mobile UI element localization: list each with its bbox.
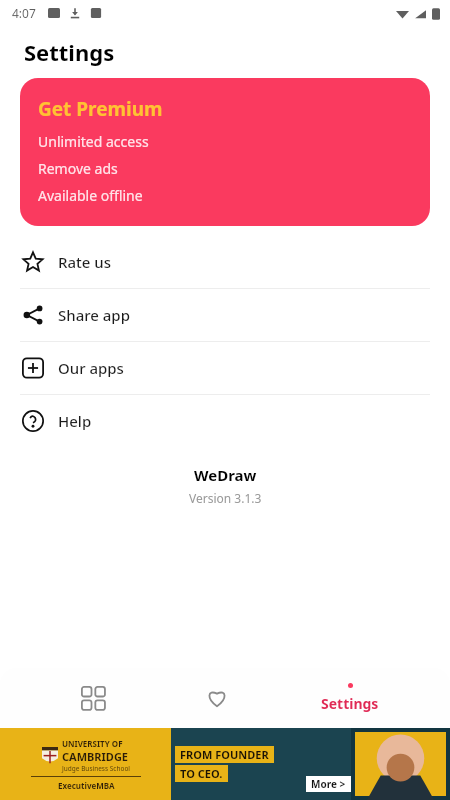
button[interactable]: Get Premium <box>20 78 430 226</box>
staticText: 4:07 <box>12 5 36 21</box>
staticText: Version 3.1.3 <box>189 490 262 506</box>
staticText: Judge Business School <box>62 764 131 773</box>
staticText: Available offline <box>38 186 143 205</box>
staticText: More > <box>311 777 346 791</box>
staticText: ExecutiveMBA <box>58 780 115 791</box>
staticText: TO CEO. <box>180 766 223 781</box>
staticText: UNIVERSITY OF <box>62 738 123 749</box>
button[interactable]: Rate us <box>0 236 450 288</box>
staticText: WeDraw <box>194 465 257 485</box>
staticText: Help <box>58 411 92 431</box>
button[interactable]: Settings <box>310 683 390 713</box>
staticText: Settings <box>24 37 115 67</box>
staticText: Unlimited access <box>38 132 149 151</box>
staticText: FROM FOUNDER <box>180 747 269 762</box>
staticText: Our apps <box>58 358 124 378</box>
button[interactable]: Share app <box>0 289 450 341</box>
staticText: CAMBRIDGE <box>62 749 129 764</box>
button[interactable]: UNIVERSITY OF <box>0 728 450 800</box>
staticText: Rate us <box>58 252 112 272</box>
button[interactable]: Favorites <box>185 668 249 728</box>
staticText: Share app <box>58 305 130 325</box>
button[interactable]: Gallery <box>61 668 125 728</box>
button[interactable]: Our apps <box>0 342 450 394</box>
staticText: Get Premium <box>38 96 163 122</box>
staticText: Settings <box>321 694 379 713</box>
button[interactable]: Help <box>0 395 450 447</box>
staticText: Remove ads <box>38 159 118 178</box>
